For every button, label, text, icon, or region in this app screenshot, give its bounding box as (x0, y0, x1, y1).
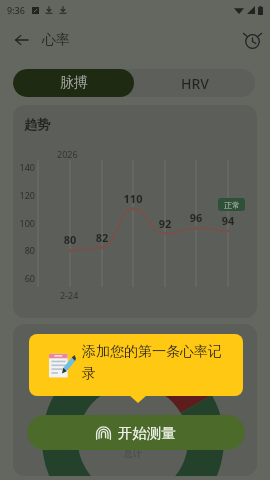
staticText: 96 (185, 210, 207, 225)
button[interactable]: 添加您的第一条心率记录 (29, 334, 243, 396)
staticText: 趋势 (24, 116, 50, 132)
staticText: 100 (15, 217, 35, 229)
staticText: 110 (122, 191, 144, 206)
button[interactable]: HRV (134, 69, 255, 97)
staticText: 92 (154, 216, 176, 231)
staticText: 总计 (124, 448, 142, 459)
staticText: 2026 (57, 148, 78, 160)
button[interactable]: 脉搏 (13, 69, 134, 97)
staticText: 94 (217, 213, 239, 228)
staticText: 2-24 (60, 289, 79, 301)
staticText: 80 (59, 232, 81, 247)
staticText: 添加您的第一条心率记录 (82, 343, 232, 383)
staticText: 正常 (224, 200, 240, 210)
button[interactable]: 开始测量 (27, 415, 245, 450)
staticText: 脉搏 (60, 74, 88, 92)
staticText: 140 (15, 161, 35, 173)
staticText: 开始测量 (118, 424, 176, 442)
staticText: 9:36 (7, 4, 25, 16)
staticText: HRV (181, 74, 209, 93)
staticText: 120 (15, 189, 35, 201)
button[interactable]: Back (8, 26, 36, 54)
staticText: 80 (15, 244, 35, 256)
staticText: 60 (15, 272, 35, 284)
staticText: 82 (91, 230, 113, 245)
button[interactable]: Alarm (238, 26, 266, 54)
staticText: 心率 (42, 31, 70, 49)
